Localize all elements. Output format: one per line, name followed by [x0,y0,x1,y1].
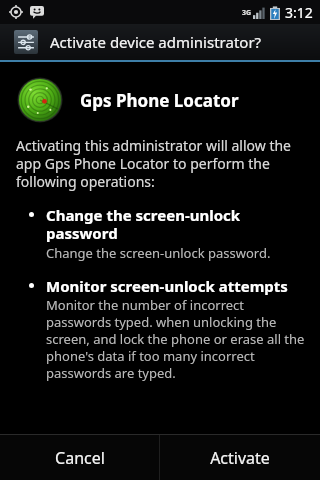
staticText: Activate [210,447,270,469]
staticText: Monitor screen-unlock attempts [46,276,288,296]
staticText: Monitor the number of incorrect password… [46,296,308,382]
staticText: Activating this administrator will allow… [16,136,308,191]
button[interactable]: Activate [160,435,320,480]
staticText: Cancel [55,447,105,469]
staticText: Change the screen-unlock password. [46,244,271,262]
button[interactable]: Cancel [0,435,159,480]
staticText: 3:12 [285,3,313,22]
staticText: Change the screen-unlock password [46,205,308,244]
staticText: Gps Phone Locator [80,89,239,112]
staticText: 3G [242,8,252,18]
staticText: Activate device administrator? [50,32,262,52]
